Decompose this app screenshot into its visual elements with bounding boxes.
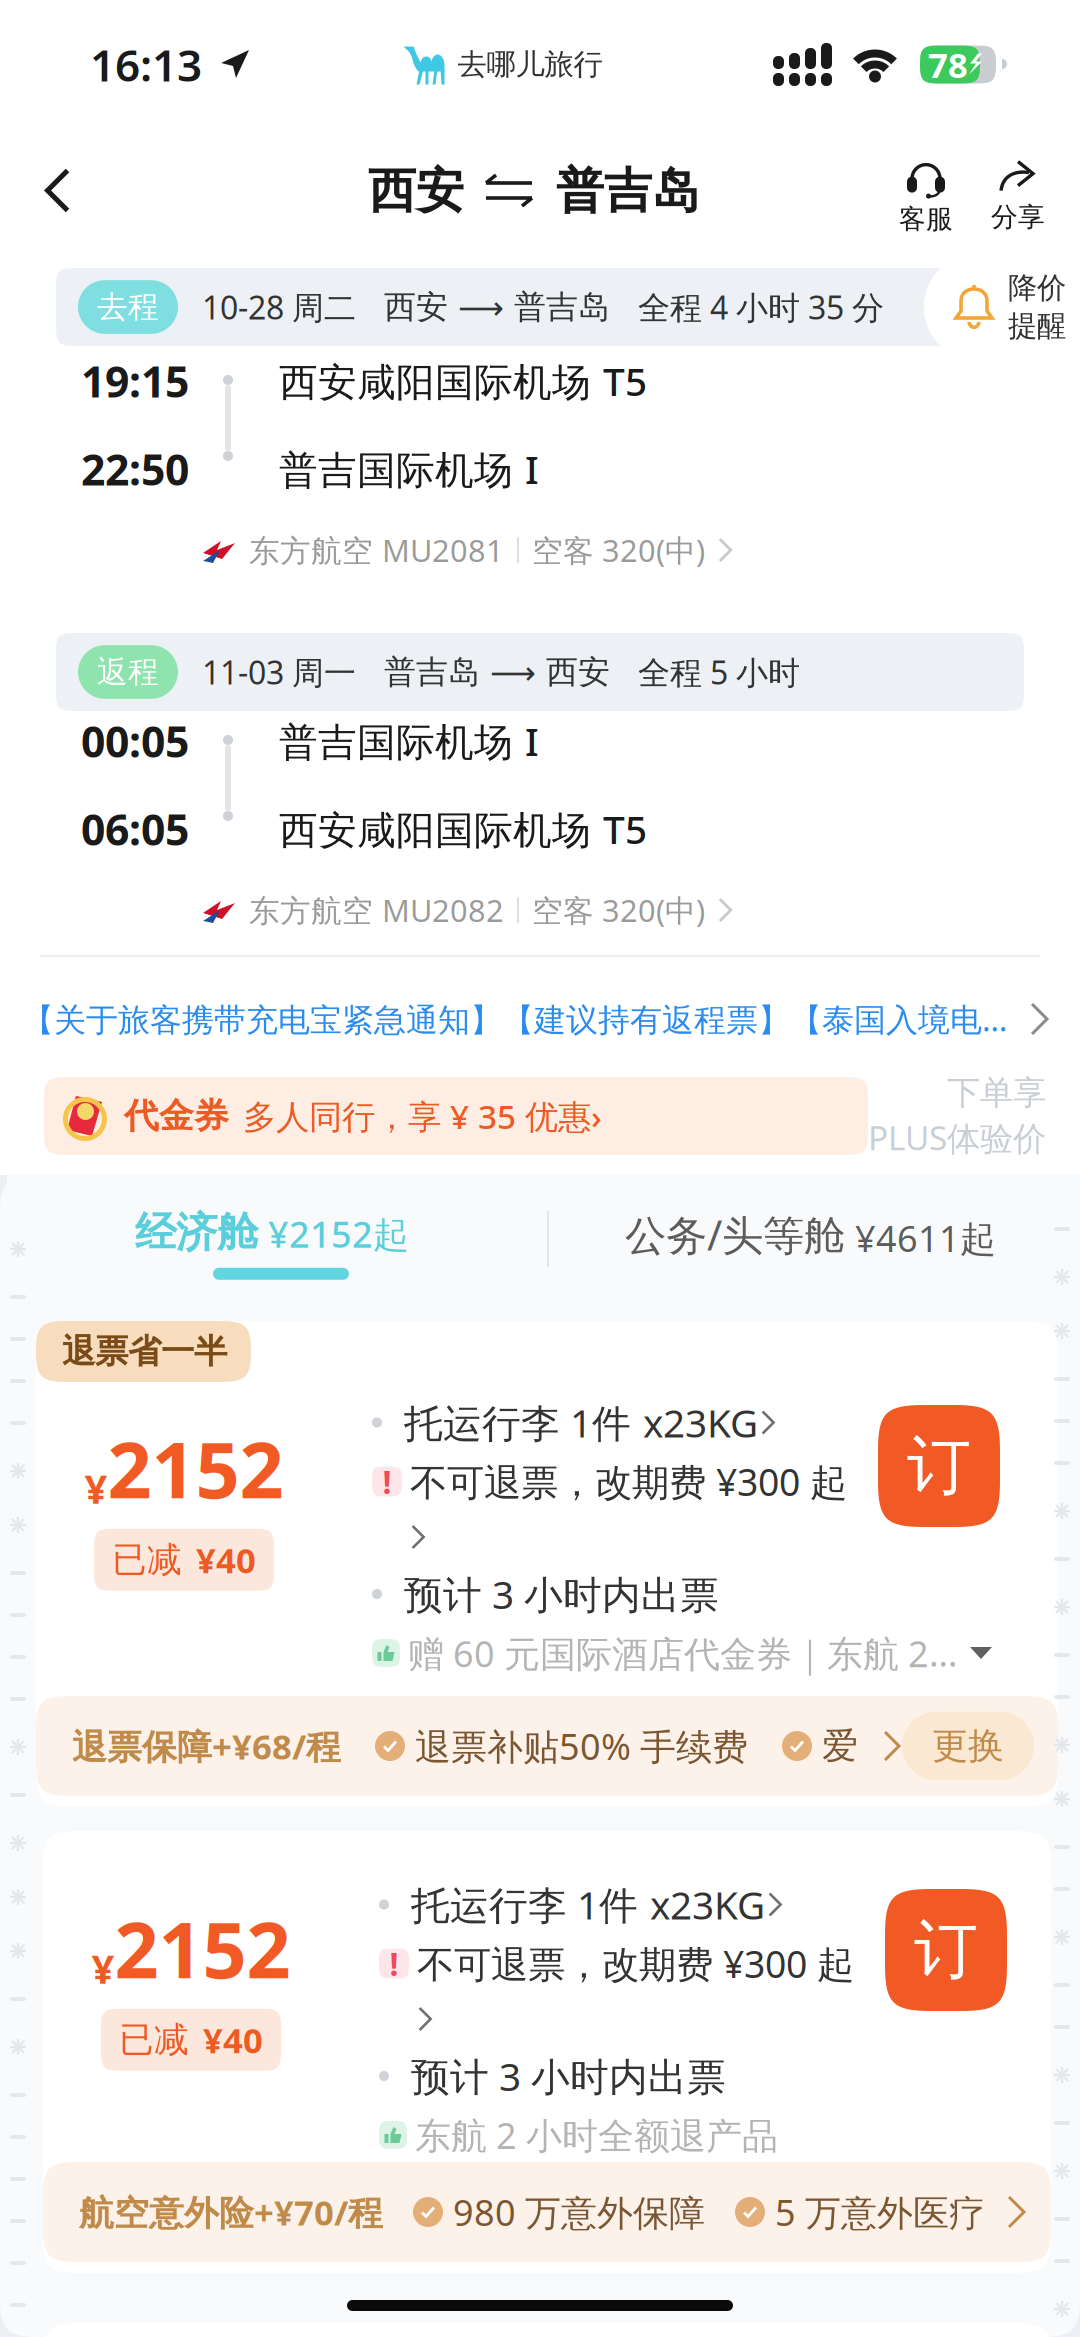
staticText: 退票省一半	[62, 1331, 227, 1372]
staticText: 已减	[119, 2018, 189, 2061]
staticText: 西安咸阳国际机场 T5	[279, 355, 647, 407]
staticText: 16:13	[90, 35, 202, 94]
staticText: 更换	[932, 1724, 1004, 1768]
staticText: 西安	[368, 161, 464, 220]
button[interactable]: 降价	[924, 253, 1080, 361]
staticText: 多人同行，享 ¥ 35 优惠›	[243, 1094, 602, 1138]
staticText: 00:05	[81, 713, 189, 769]
staticText: 公务/头等舱	[625, 1207, 845, 1262]
staticText: 经济舱	[135, 1207, 258, 1258]
staticText: ¥4611起	[855, 1214, 996, 1262]
staticText: 西安咸阳国际机场 T5	[279, 803, 647, 855]
staticText: 空客 320(中)	[532, 530, 705, 570]
button[interactable]: 分享	[972, 141, 1064, 251]
staticText: 托运行李 1件 x23KG	[411, 1879, 765, 1930]
staticText: 西安 ⟶ 普吉岛	[384, 287, 610, 327]
staticText: 已减	[112, 1538, 182, 1581]
staticText: 普吉国际机场 I	[279, 443, 539, 495]
staticText: 客服	[899, 203, 953, 235]
button[interactable]: 经济舱	[7, 1175, 547, 1321]
staticText: 普吉岛	[556, 161, 700, 220]
button[interactable]: 客服	[880, 141, 972, 251]
staticText: 分享	[991, 201, 1045, 233]
staticText: !	[382, 1460, 391, 1503]
staticText: 东航 2 小时全额退产品	[415, 2111, 778, 2159]
staticText: 提醒	[1008, 308, 1066, 344]
button[interactable]: 公务/头等舱	[7, 1175, 1080, 1321]
staticText: 2152	[114, 1897, 290, 2000]
staticText: 全程 5 小时	[638, 651, 800, 693]
button[interactable]: 东方航空 MU2082	[0, 875, 1080, 945]
staticText: 普吉国际机场 I	[279, 715, 539, 767]
staticText: 5 万意外医疗	[775, 2188, 985, 2236]
staticText: ¥	[84, 1462, 107, 1515]
staticText: 【关于旅客携带充电宝紧急通知】【建议持有返程票】【泰国入境电…	[22, 998, 1007, 1040]
staticText: 不可退票，改期费 ¥300 起	[410, 1457, 847, 1506]
staticText: 11-03 周一	[202, 651, 356, 693]
staticText: 退票保障+¥68/程	[72, 1723, 341, 1769]
staticText: 06:05	[81, 801, 189, 857]
button[interactable]: 订	[885, 1889, 1007, 2011]
button[interactable]: 东方航空 MU2081	[0, 515, 1080, 585]
staticText: 空客 320(中)	[532, 890, 705, 930]
button[interactable]: 航空意外险+¥70/程	[43, 2162, 1051, 2262]
staticText: 爱	[822, 1724, 858, 1768]
staticText: 返程	[97, 653, 159, 691]
staticText: PLUS体验价	[868, 1115, 1046, 1160]
staticText: 订	[914, 1911, 978, 1989]
staticText: 航空意外险+¥70/程	[79, 2189, 383, 2235]
button[interactable]: 退票保障+¥68/程	[36, 1696, 1058, 1796]
staticText: 降价	[1008, 270, 1066, 306]
button[interactable]: 订	[878, 1405, 1000, 1527]
button[interactable]: 【关于旅客携带充电宝紧急通知】【建议持有返程票】【泰国入境电…	[0, 957, 1080, 1067]
staticText: 10-28 周二	[202, 286, 356, 328]
staticText: 去程	[97, 288, 159, 326]
staticText: 78	[928, 41, 968, 87]
staticText: ¥	[91, 1942, 114, 1995]
staticText: 订	[907, 1427, 971, 1505]
staticText: 预计 3 小时内出票	[411, 2050, 726, 2102]
staticText: 不可退票，改期费 ¥300 起	[417, 1939, 854, 1988]
staticText: ¥2152起	[268, 1210, 409, 1258]
staticText: 下单享	[947, 1072, 1046, 1113]
staticText: 代金券	[124, 1095, 229, 1137]
staticText: 赠 60 元国际酒店代金券｜东航 2 小时全	[408, 1629, 962, 1677]
button[interactable]: 代金券	[44, 1077, 868, 1155]
staticText: 22:50	[81, 441, 189, 497]
staticText: 预计 3 小时内出票	[404, 1568, 719, 1620]
staticText: ¥40	[196, 1537, 256, 1583]
staticText: 东方航空 MU2081	[249, 530, 504, 570]
staticText: 普吉岛 ⟶ 西安	[384, 652, 610, 692]
staticText: 19:15	[81, 353, 189, 409]
staticText: 东方航空 MU2082	[249, 890, 504, 930]
staticText: 退票补贴50% 手续费	[415, 1722, 748, 1770]
staticText: 全程 4 小时 35 分	[638, 286, 884, 328]
staticText: 去哪儿旅行	[457, 46, 602, 82]
staticText: !	[389, 1942, 398, 1985]
staticText: 2152	[107, 1417, 283, 1520]
staticText: 980 万意外保障	[453, 2188, 705, 2236]
staticText: ¥40	[203, 2017, 263, 2063]
staticText: 托运行李 1件 x23KG	[404, 1397, 758, 1448]
button[interactable]: 返回	[0, 129, 116, 253]
